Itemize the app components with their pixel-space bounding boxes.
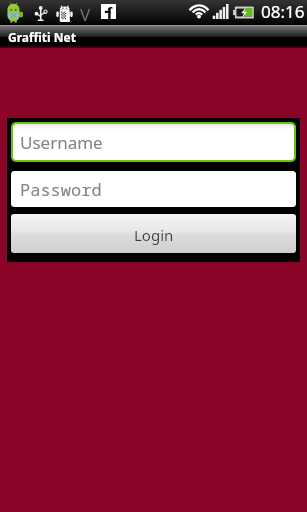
staticText: Username [20,131,103,154]
staticText: 08:16 [261,0,305,23]
staticText: Password [20,178,102,201]
staticText: Graffiti Net [8,29,76,45]
button[interactable]: Password [11,171,296,207]
button[interactable]: Login [11,214,296,253]
staticText: Login [134,225,174,245]
button[interactable]: Username [13,124,294,160]
staticText: V [80,3,91,26]
